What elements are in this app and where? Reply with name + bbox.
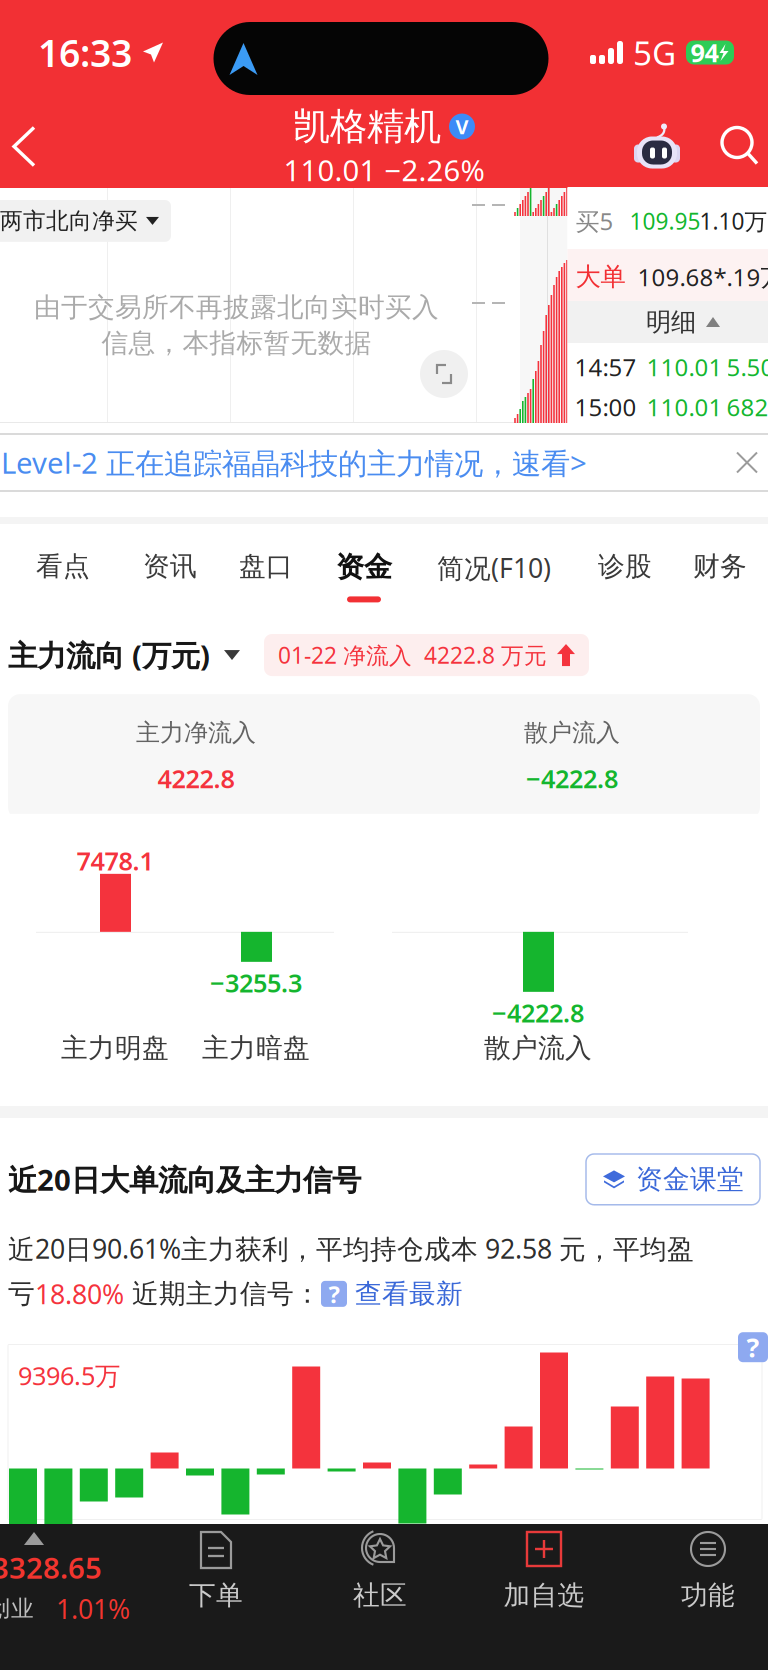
staticText: 15:00 (574, 391, 636, 423)
button[interactable]: 查看最新 (347, 1277, 463, 1310)
staticText: 近20日90.61%主力获利，平均持仓成本 92.58 元，平均盈 (8, 1231, 694, 1266)
staticText: 看点 (36, 550, 90, 583)
staticText: 加自选 (503, 1579, 584, 1612)
button[interactable]: Expand chart (420, 350, 468, 398)
staticText: 凯格精机 (293, 104, 441, 149)
staticText: −3255.3 (210, 966, 302, 999)
button[interactable]: 看点 (0, 524, 133, 612)
button[interactable]: Level-2 正在追踪福晶科技的主力情况，速看> (0, 434, 768, 491)
button[interactable]: 简况(F10) (424, 524, 564, 612)
staticText: 创业 (0, 1595, 34, 1622)
staticText: 诊股 (598, 550, 652, 583)
button[interactable]: 01-22 净流入 4222.8 万元 (264, 634, 589, 676)
staticText: 散户流入 (484, 1032, 592, 1065)
button[interactable]: Help (738, 1329, 768, 1365)
staticText: 近期主力信号： (124, 1277, 321, 1310)
staticText: Level-2 正在追踪福晶科技的主力情况，速看> (1, 443, 587, 482)
staticText: 1.01% (56, 1591, 130, 1626)
staticText: 3328.65 (0, 1548, 102, 1587)
staticText: −4222.8 (492, 996, 584, 1029)
staticText: 由于交易所不再披露北向实时买入 (34, 291, 439, 324)
staticText: 16:33 (38, 28, 132, 77)
staticText: 9396.5万 (18, 1358, 120, 1392)
staticText: 109.95 (629, 206, 700, 236)
button[interactable]: 盘口 (196, 524, 336, 612)
staticText: 主力净流入 (136, 718, 256, 748)
staticText: 110.01 (646, 351, 722, 383)
staticText: 5G (633, 30, 676, 75)
staticText: 主力暗盘 (202, 1032, 310, 1065)
staticText: 社区 (353, 1579, 407, 1612)
button[interactable]: AI assistant (632, 121, 682, 171)
button[interactable]: 诊股 (555, 524, 695, 612)
staticText: 18.80% (35, 1276, 124, 1312)
button[interactable]: 资金 (294, 524, 434, 612)
staticText: 94 (690, 36, 718, 69)
staticText: 110.01 −2.26% (283, 150, 484, 189)
staticText: 资金 (336, 550, 392, 584)
staticText: 亏 (8, 1277, 35, 1310)
staticText: 大单 (575, 261, 625, 292)
button[interactable]: 社区 (298, 1524, 462, 1670)
staticText: 买5 (575, 205, 613, 237)
staticText: 查看最新 (347, 1277, 463, 1310)
staticText: −4222.8 (526, 762, 618, 795)
staticText: 主力流向 (万元) (8, 636, 210, 675)
staticText: 109.68*.19万 (637, 261, 768, 293)
staticText: 资金课堂 (636, 1163, 744, 1196)
staticText: ? (746, 1329, 759, 1365)
staticText: 功能 (681, 1579, 735, 1612)
button[interactable]: Back (0, 105, 60, 188)
staticText: 财务 (693, 550, 747, 583)
staticText: 主力明盘 (61, 1032, 169, 1065)
staticText: V (455, 113, 468, 140)
staticText: 下单 (189, 1579, 243, 1612)
staticText: 5.50万 (726, 351, 768, 383)
button[interactable]: 3328.65 (0, 1524, 134, 1670)
staticText: 4222.8 (157, 762, 234, 795)
staticText: 682万 (726, 391, 768, 423)
staticText: ? (328, 1278, 339, 1310)
staticText: 两市北向净买 (0, 207, 138, 235)
staticText: 信息，本指标暂无数据 (101, 327, 371, 360)
button[interactable]: 财务 (650, 524, 768, 612)
button[interactable]: 加自选 (462, 1524, 626, 1670)
button[interactable]: 资讯 (100, 524, 240, 612)
button[interactable]: 下单 (134, 1524, 298, 1670)
button[interactable]: 资金课堂 (586, 1154, 760, 1205)
staticText: 散户流入 (524, 718, 620, 748)
staticText: 盘口 (239, 550, 293, 583)
button[interactable]: 功能 (626, 1524, 768, 1670)
button[interactable]: 两市北向净买 (0, 200, 171, 242)
staticText: 简况(F10) (437, 550, 551, 585)
staticText: 01-22 净流入 4222.8 万元 (278, 640, 547, 670)
staticText: 14:57 (574, 351, 636, 383)
staticText: 近20日大单流向及主力信号 (8, 1160, 361, 1199)
staticText: 7478.1 (76, 844, 153, 877)
staticText: 资讯 (143, 550, 197, 583)
staticText: 1.10万 (699, 206, 767, 236)
staticText: 110.01 (646, 391, 722, 423)
button[interactable]: Search (720, 126, 760, 166)
staticText: 明细 (646, 306, 696, 337)
